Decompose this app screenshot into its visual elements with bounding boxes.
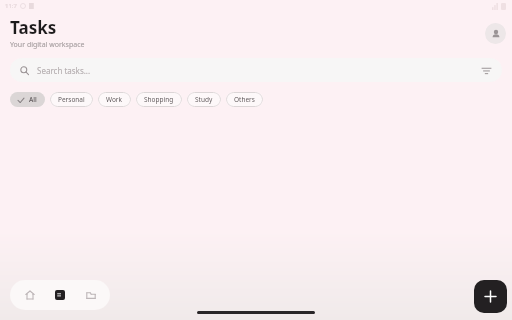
- button[interactable]: Filter: [480, 64, 492, 76]
- staticText: Study: [195, 95, 213, 104]
- staticText: Personal: [58, 95, 85, 104]
- button[interactable]: Shopping: [136, 92, 182, 107]
- button[interactable]: All: [10, 92, 45, 107]
- button[interactable]: Work: [98, 92, 131, 107]
- button[interactable]: Home: [19, 284, 41, 306]
- staticText: Shopping: [144, 95, 174, 104]
- staticText: All: [29, 95, 37, 104]
- button[interactable]: Profile: [485, 23, 506, 44]
- staticText: Tasks: [10, 16, 57, 39]
- staticText: Work: [106, 95, 123, 104]
- staticText: Your digital workspace: [10, 40, 85, 50]
- button[interactable]: Study: [187, 92, 221, 107]
- button[interactable]: Search tasks...: [10, 58, 502, 82]
- button[interactable]: Folders: [80, 284, 102, 306]
- staticText: Search tasks...: [37, 65, 91, 76]
- staticText: 11:7: [5, 2, 17, 10]
- button[interactable]: Personal: [50, 92, 93, 107]
- button[interactable]: Tasks: [49, 284, 71, 306]
- button[interactable]: Others: [226, 92, 263, 107]
- button[interactable]: Add task: [474, 280, 507, 313]
- staticText: Others: [234, 95, 255, 104]
